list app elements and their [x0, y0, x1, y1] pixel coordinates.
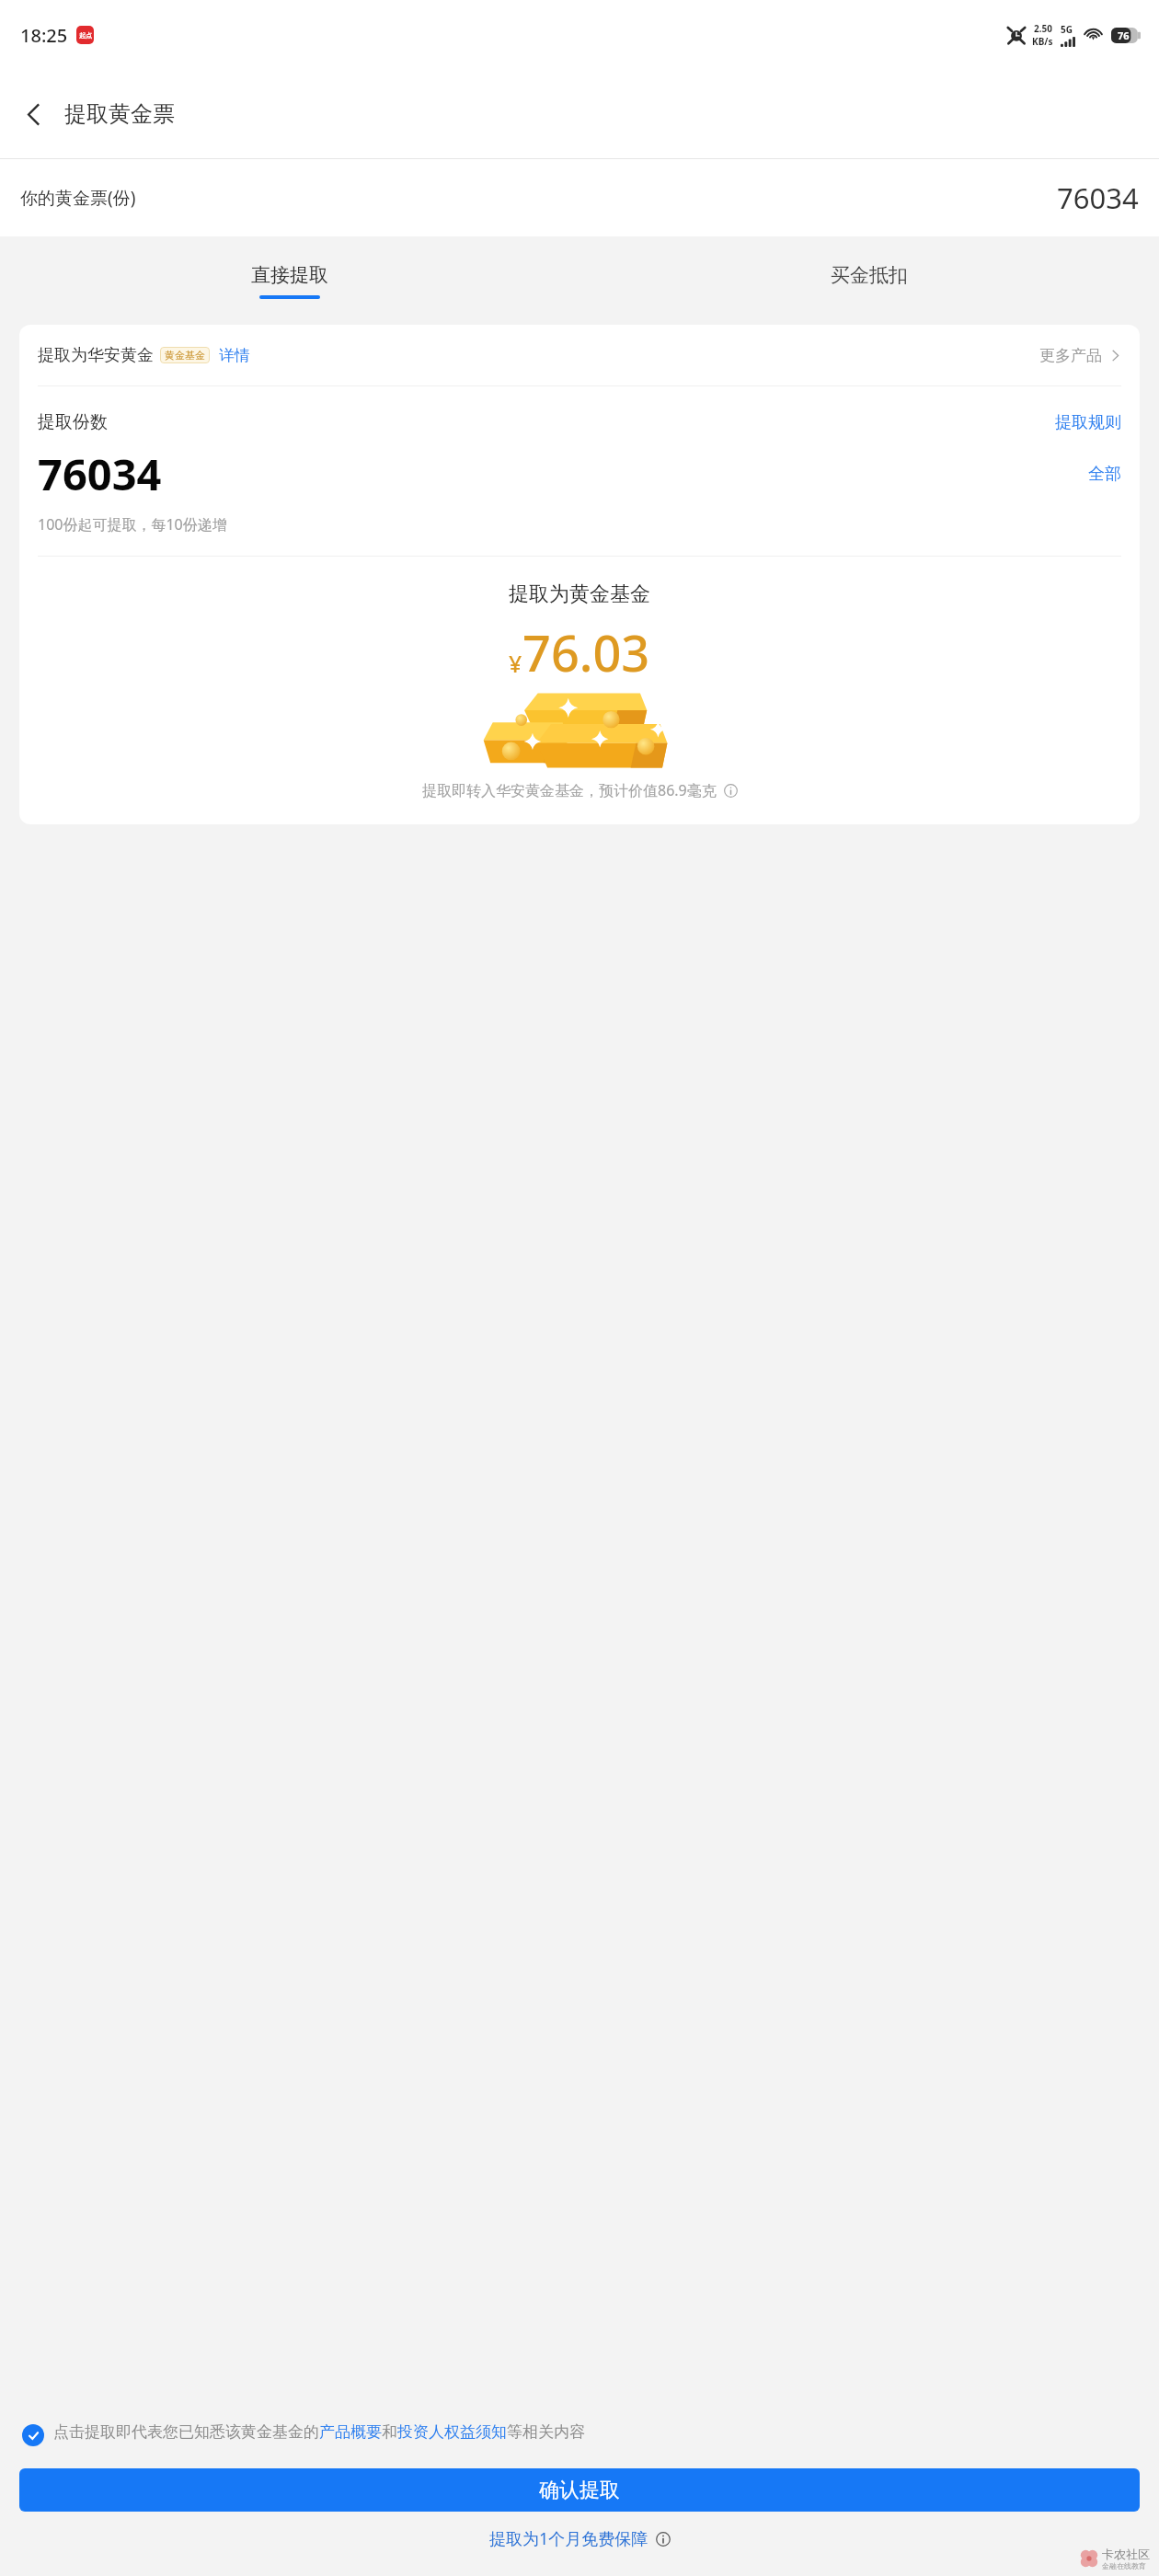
- button[interactable]: 返回: [6, 87, 60, 141]
- staticText: 提取规则: [1055, 412, 1121, 433]
- staticText: 提取为1个月免费保障: [489, 2527, 648, 2550]
- staticText: 点击提取即代表您已知悉该黄金基金的产品概要和投资人权益须知等相关内容: [53, 2422, 585, 2442]
- staticText: 2.50: [1034, 22, 1052, 35]
- button[interactable]: 全部: [1088, 464, 1121, 485]
- button[interactable]: 直接提取: [0, 236, 579, 325]
- staticText: KB/s: [1032, 35, 1053, 48]
- button[interactable]: 确认提取: [19, 2468, 1140, 2512]
- staticText: 你的黄金票(份): [20, 186, 136, 210]
- staticText: 买金抵扣: [831, 263, 908, 287]
- staticText: 5G: [1061, 23, 1073, 36]
- staticText: 76.03: [522, 618, 650, 686]
- button[interactable]: 提取规则: [1055, 412, 1121, 433]
- staticText: 提取即转入华安黄金基金，预计价值86.9毫克: [422, 780, 717, 800]
- staticText: ¥: [509, 648, 522, 679]
- button[interactable]: 买金抵扣: [579, 236, 1159, 325]
- staticText: 黄金基金: [165, 349, 205, 362]
- button[interactable]: 更多产品: [1039, 346, 1121, 365]
- button[interactable]: 点击提取即代表您已知悉该黄金基金的产品概要和投资人权益须知等相关内容: [19, 2422, 1140, 2446]
- staticText: 提取为华安黄金: [38, 345, 154, 366]
- button[interactable]: 提取为1个月免费保障: [19, 2527, 1140, 2550]
- staticText: 卡农社区: [1102, 2547, 1150, 2561]
- staticText: 76034: [38, 444, 162, 503]
- staticText: 详情: [219, 346, 250, 365]
- staticText: 提取份数: [38, 411, 108, 433]
- staticText: 提取黄金票: [64, 100, 175, 128]
- button[interactable]: 详情: [219, 346, 250, 365]
- staticText: 金融在线教育: [1102, 2561, 1146, 2570]
- staticText: 直接提取: [251, 263, 328, 287]
- staticText: 76034: [1057, 178, 1139, 217]
- staticText: 更多产品: [1039, 346, 1102, 365]
- staticText: 76: [1118, 29, 1130, 42]
- staticText: 确认提取: [539, 2478, 620, 2503]
- staticText: 起点: [79, 31, 92, 40]
- staticText: 提取为黄金基金: [19, 581, 1140, 607]
- staticText: 全部: [1088, 464, 1121, 485]
- staticText: 100份起可提取，每10份递增: [38, 514, 227, 535]
- staticText: 18:25: [20, 23, 68, 48]
